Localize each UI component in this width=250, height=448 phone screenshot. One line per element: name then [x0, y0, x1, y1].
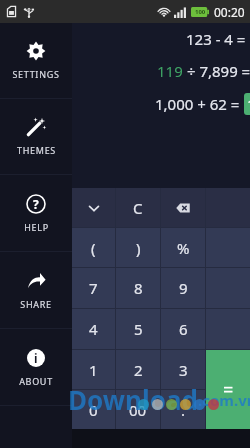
staticText: i [34, 350, 38, 366]
button[interactable]: 5 [116, 309, 160, 349]
staticText: 9 [179, 278, 188, 298]
staticText: 3 [179, 360, 188, 380]
staticText: 1,000 + 62 = [155, 94, 244, 114]
button[interactable]: Collapse [72, 188, 115, 227]
button[interactable]: 7 [72, 268, 115, 308]
staticText: . [181, 400, 186, 420]
staticText: 123 - 4 = [186, 29, 250, 49]
staticText: ABOUT [19, 375, 53, 387]
staticText: SHARE [20, 298, 52, 310]
staticText: 1 [89, 360, 98, 380]
button[interactable]: 00 [116, 390, 160, 429]
staticText: 119 [157, 61, 183, 81]
button[interactable]: ( [72, 228, 115, 267]
button[interactable]: SETTINGS [0, 23, 72, 98]
staticText: C [133, 198, 143, 218]
staticText: 7 [89, 278, 98, 298]
staticText: ( [91, 238, 96, 258]
staticText: ? [33, 196, 39, 212]
button[interactable]: % [161, 228, 205, 267]
button[interactable]: 4 [72, 309, 115, 349]
button[interactable]: 1 [72, 350, 115, 389]
staticText: .com.vn [198, 390, 250, 410]
staticText: 1,0 [247, 94, 250, 114]
staticText: 2 [134, 360, 143, 380]
staticText: 00 [129, 400, 147, 420]
button[interactable]: i [0, 329, 72, 405]
button[interactable]: 0 [72, 390, 115, 429]
button[interactable]: 3 [161, 350, 205, 389]
staticText: % [177, 238, 190, 258]
staticText: Download [68, 382, 198, 417]
staticText: 8 [134, 278, 143, 298]
staticText: ÷ 7,899 = [183, 61, 250, 81]
button[interactable]: . [161, 390, 205, 429]
staticText: 5 [134, 319, 143, 339]
staticText: 100 [195, 8, 206, 16]
button[interactable]: Backspace [161, 188, 205, 227]
button[interactable]: ? [0, 175, 72, 251]
button[interactable]: 9 [161, 268, 205, 308]
button[interactable]: 8 [116, 268, 160, 308]
staticText: ) [136, 238, 141, 258]
staticText: = [223, 377, 234, 402]
staticText: 0 [89, 400, 98, 420]
staticText: THEMES [17, 144, 56, 156]
button[interactable]: THEMES [0, 99, 72, 174]
button[interactable]: C [116, 188, 160, 227]
staticText: 00:20 [214, 4, 245, 20]
staticText: 4 [89, 319, 98, 339]
button[interactable]: SHARE [0, 252, 72, 328]
staticText: 6 [179, 319, 188, 339]
staticText: HELP [24, 221, 49, 233]
button[interactable]: ) [116, 228, 160, 267]
button[interactable]: = [206, 350, 250, 429]
staticText: SETTINGS [12, 68, 60, 80]
button[interactable]: 2 [116, 350, 160, 389]
button[interactable]: 6 [161, 309, 205, 349]
